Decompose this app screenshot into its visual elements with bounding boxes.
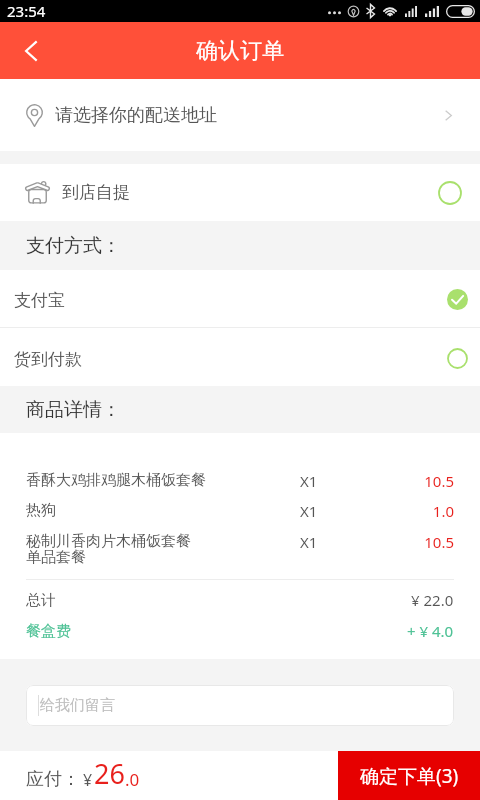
staticText: 确认订单: [196, 37, 284, 65]
staticText: ¥: [83, 769, 93, 791]
staticText: 请选择你的配送地址: [55, 104, 217, 127]
staticText: 商品详情：: [26, 398, 121, 422]
button[interactable]: 请选择你的配送地址: [0, 79, 480, 151]
staticText: .0: [125, 768, 140, 791]
button[interactable]: 货到付款: [0, 328, 480, 386]
staticText: X1: [300, 501, 344, 521]
button[interactable]: 到店自提: [0, 164, 480, 221]
staticText: 餐盒费: [26, 622, 71, 641]
staticText: 26: [94, 755, 125, 792]
staticText: 支付宝: [14, 290, 65, 311]
button[interactable]: 给我们留言: [26, 685, 454, 726]
button[interactable]: 确定下单(3): [338, 751, 480, 800]
staticText: 应付：: [26, 768, 80, 791]
staticText: X1: [300, 471, 344, 491]
staticText: 10.5: [344, 532, 454, 552]
staticText: ¥ 22.0: [411, 590, 454, 610]
button[interactable]: Back: [0, 22, 62, 79]
staticText: 到店自提: [62, 182, 130, 203]
staticText: 23:54: [7, 1, 46, 21]
staticText: 总计: [26, 591, 56, 610]
staticText: 1.0: [344, 501, 454, 521]
staticText: 秘制川香肉片木桶饭套餐: [26, 532, 191, 551]
staticText: 热狗: [26, 501, 56, 520]
staticText: X1: [300, 532, 344, 552]
button[interactable]: 支付宝: [0, 270, 480, 327]
staticText: 香酥大鸡排鸡腿木桶饭套餐: [26, 471, 206, 490]
staticText: 确定下单(3): [360, 763, 459, 789]
staticText: 单品套餐: [26, 548, 86, 567]
staticText: 货到付款: [14, 349, 82, 370]
staticText: + ¥ 4.0: [407, 621, 454, 641]
staticText: 10.5: [344, 471, 454, 491]
staticText: 支付方式：: [26, 234, 121, 258]
staticText: 给我们留言: [40, 696, 115, 715]
